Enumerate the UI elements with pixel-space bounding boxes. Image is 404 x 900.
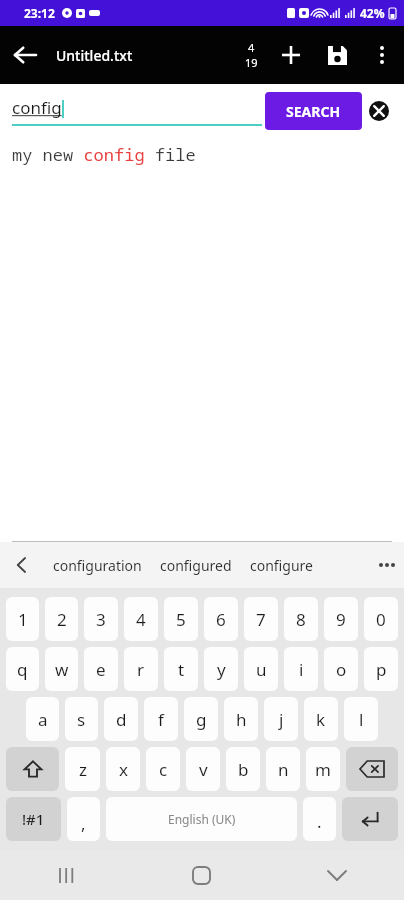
staticText: Untitled.txt xyxy=(56,46,133,65)
button[interactable]: Previous suggestions xyxy=(0,542,44,588)
staticText: my new config file xyxy=(12,143,196,166)
staticText: !#1 xyxy=(22,809,45,829)
button[interactable]: Home xyxy=(134,850,269,900)
button[interactable]: q xyxy=(6,647,39,691)
staticText: 0 xyxy=(376,608,386,631)
button[interactable]: y xyxy=(204,647,238,691)
staticText: configure xyxy=(250,556,313,575)
button[interactable]: o xyxy=(324,647,358,691)
button[interactable]: Backspace xyxy=(346,747,398,791)
button[interactable]: n xyxy=(266,747,300,791)
button[interactable]: Back xyxy=(0,30,50,80)
staticText: English (UK) xyxy=(168,811,236,827)
staticText: p xyxy=(376,658,387,681)
staticText: , xyxy=(81,812,86,835)
button[interactable]: j xyxy=(264,697,298,741)
staticText: 23:12 xyxy=(24,5,55,21)
button[interactable]: c xyxy=(146,747,180,791)
staticText: 2 xyxy=(57,608,67,631)
staticText: 8 xyxy=(296,608,306,631)
button[interactable]: !#1 xyxy=(6,797,61,841)
staticText: h xyxy=(236,708,247,731)
staticText: 6 xyxy=(216,608,226,631)
button[interactable]: w xyxy=(45,647,78,691)
button[interactable]: 2 xyxy=(45,597,78,641)
button[interactable]: SEARCH xyxy=(265,92,362,130)
staticText: . xyxy=(317,810,322,833)
button[interactable]: Enter xyxy=(342,797,398,841)
staticText: s xyxy=(77,708,86,731)
button[interactable]: p xyxy=(364,647,398,691)
button[interactable]: Add xyxy=(268,32,314,78)
button[interactable]: e xyxy=(84,647,118,691)
staticText: a xyxy=(38,708,48,731)
staticText: 3 xyxy=(96,608,106,631)
button[interactable]: Close search xyxy=(362,94,396,128)
button[interactable]: i xyxy=(284,647,318,691)
staticText: k xyxy=(316,708,326,731)
button[interactable]: Hide keyboard xyxy=(269,850,404,900)
button[interactable]: configuration xyxy=(44,548,151,583)
button[interactable]: Shift xyxy=(6,747,59,791)
staticText: config xyxy=(12,96,62,119)
button[interactable]: 5 xyxy=(164,597,198,641)
button[interactable]: More options xyxy=(360,33,404,77)
button[interactable]: , xyxy=(67,797,100,841)
button[interactable]: 1 xyxy=(6,597,39,641)
button[interactable]: Recent apps xyxy=(0,850,134,900)
button[interactable]: r xyxy=(124,647,158,691)
button[interactable]: 8 xyxy=(284,597,318,641)
button[interactable]: 7 xyxy=(244,597,278,641)
button[interactable]: a xyxy=(26,697,59,741)
button[interactable]: More suggestions xyxy=(370,542,404,588)
button[interactable]: t xyxy=(164,647,198,691)
staticText: n xyxy=(278,758,289,781)
button[interactable]: English (UK) xyxy=(106,797,297,841)
button[interactable]: z xyxy=(65,747,100,791)
button[interactable]: 6 xyxy=(204,597,238,641)
button[interactable]: f xyxy=(144,697,178,741)
button[interactable]: x xyxy=(106,747,140,791)
button[interactable]: d xyxy=(104,697,138,741)
button[interactable]: u xyxy=(244,647,278,691)
button[interactable]: b xyxy=(226,747,260,791)
staticText: 4 xyxy=(136,608,146,631)
staticText: r xyxy=(137,658,145,681)
staticText: l xyxy=(359,708,364,731)
button[interactable]: 4 xyxy=(239,40,264,70)
staticText: e xyxy=(96,658,106,681)
staticText: v xyxy=(199,758,208,781)
staticText: z xyxy=(79,758,87,781)
button[interactable]: . xyxy=(303,797,336,841)
staticText: o xyxy=(336,658,347,681)
staticText: configured xyxy=(160,556,232,575)
button[interactable]: configure xyxy=(241,548,322,583)
button[interactable]: m xyxy=(306,747,340,791)
staticText: 7 xyxy=(256,608,266,631)
staticText: 5 xyxy=(176,608,186,631)
button[interactable]: 3 xyxy=(84,597,118,641)
staticText: g xyxy=(196,708,207,731)
button[interactable]: g xyxy=(184,697,218,741)
staticText: SEARCH xyxy=(286,102,341,121)
button[interactable]: k xyxy=(304,697,338,741)
staticText: i xyxy=(299,658,304,681)
staticText: b xyxy=(238,758,249,781)
staticText: 9 xyxy=(336,608,346,631)
button[interactable]: l xyxy=(344,697,378,741)
button[interactable]: configured xyxy=(151,548,241,583)
staticText: w xyxy=(55,658,69,681)
button[interactable]: 4 xyxy=(124,597,158,641)
staticText: x xyxy=(119,758,128,781)
staticText: 1 xyxy=(18,608,28,631)
staticText: m xyxy=(315,758,331,781)
button[interactable]: 9 xyxy=(324,597,358,641)
button[interactable]: h xyxy=(224,697,258,741)
staticText: t xyxy=(178,658,185,681)
staticText: c xyxy=(159,758,168,781)
staticText: j xyxy=(279,708,284,731)
button[interactable]: Save xyxy=(314,32,360,78)
button[interactable]: s xyxy=(65,697,98,741)
button[interactable]: 0 xyxy=(364,597,398,641)
button[interactable]: v xyxy=(186,747,220,791)
